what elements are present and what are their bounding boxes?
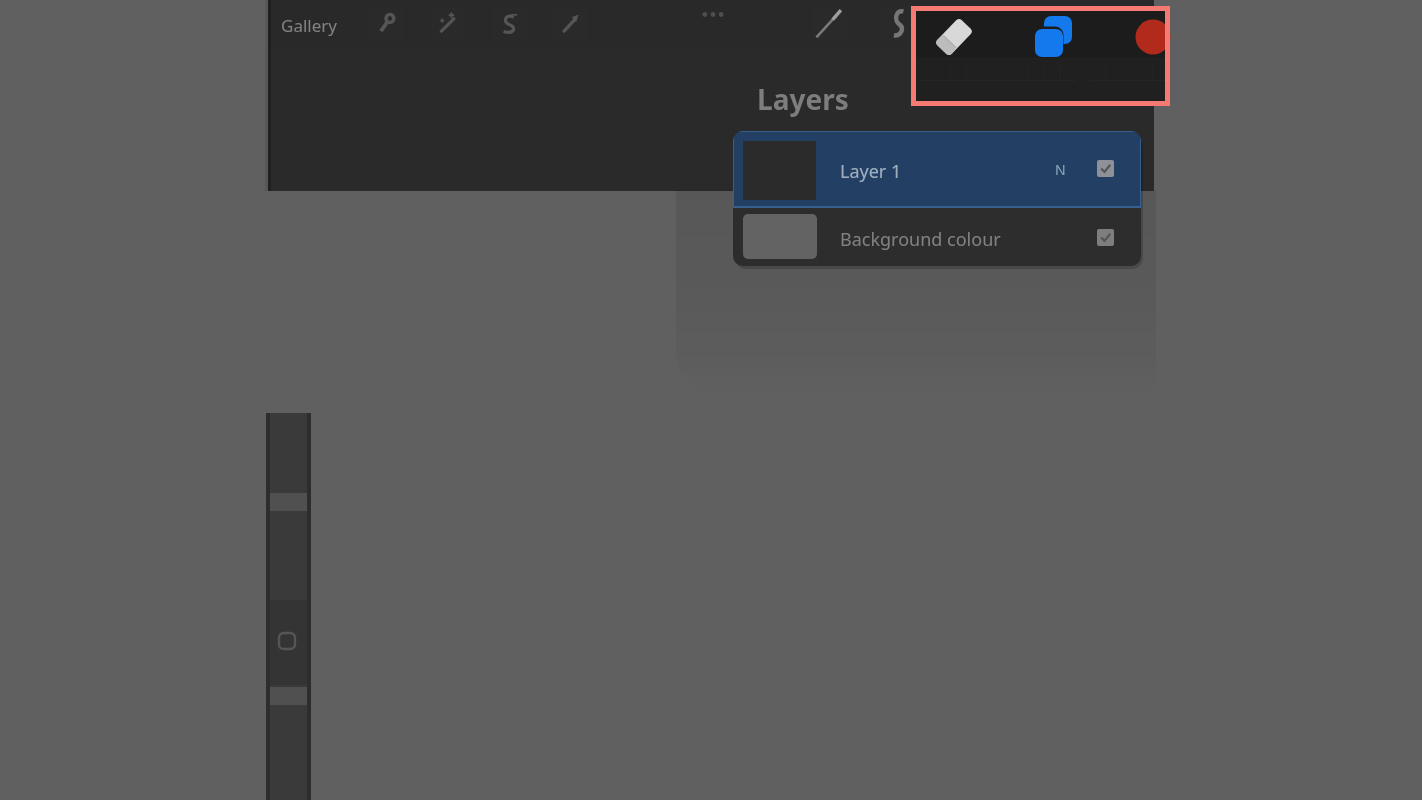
staticText: Background colour [840, 227, 1001, 252]
button[interactable]: Selection [492, 7, 526, 41]
button[interactable]: Actions [369, 7, 403, 41]
button[interactable]: Paint [813, 6, 847, 40]
button[interactable]: Eraser, Layers and Colour tools [914, 9, 1167, 103]
button[interactable]: Background visible [1097, 229, 1114, 246]
button[interactable]: Gallery [275, 10, 343, 41]
button[interactable]: More [696, 2, 730, 28]
button[interactable]: Layer 1 [733, 131, 1141, 207]
button[interactable]: Transform [553, 7, 587, 41]
button[interactable]: Modify [279, 633, 295, 649]
staticText: N [1055, 160, 1066, 179]
button[interactable]: Layer visible [1097, 160, 1114, 177]
staticText: Gallery [281, 14, 337, 37]
staticText: Layers [757, 80, 849, 118]
button[interactable]: Smudge [881, 6, 915, 40]
button[interactable]: Adjustments [431, 7, 465, 41]
staticText: Layer 1 [840, 159, 902, 184]
button[interactable]: Background colour [733, 207, 1141, 266]
